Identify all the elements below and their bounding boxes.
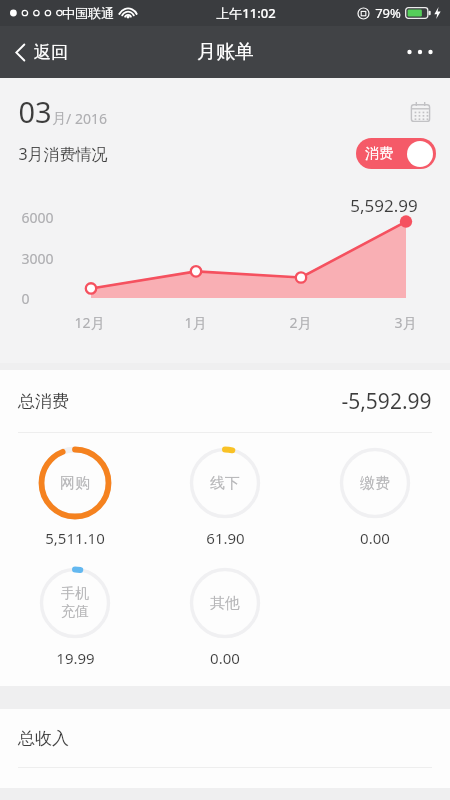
staticText: 月	[52, 110, 66, 128]
button[interactable]: More options	[391, 26, 450, 78]
staticText: 3月	[394, 313, 417, 332]
staticText: 3000	[21, 249, 54, 268]
button[interactable]: 返回	[0, 26, 84, 78]
button[interactable]: 网购	[0, 446, 150, 548]
staticText: 其他	[210, 594, 240, 613]
staticText: 5,592.99	[350, 194, 418, 217]
staticText: 充值	[61, 603, 89, 621]
staticText: 61.90	[206, 528, 245, 548]
staticText: 6000	[21, 208, 54, 227]
staticText: 0.00	[360, 528, 390, 548]
button[interactable]: 线下	[150, 446, 300, 548]
staticText: 03	[18, 92, 52, 131]
staticText: -5,592.99	[341, 387, 432, 416]
staticText: / 2016	[66, 109, 107, 128]
button[interactable]: 缴费	[300, 446, 450, 548]
staticText: 79%	[375, 4, 401, 22]
button[interactable]: 其他	[150, 566, 300, 668]
staticText: 0	[21, 289, 30, 308]
staticText: 12月	[74, 313, 105, 332]
staticText: 19.99	[56, 648, 95, 668]
button[interactable]: 手机	[0, 566, 150, 668]
staticText: 中国联通	[62, 5, 114, 21]
staticText: 月账单	[197, 40, 254, 64]
staticText: 线下	[210, 474, 240, 493]
staticText: 1月	[184, 313, 207, 332]
staticText: 5,511.10	[45, 528, 105, 548]
staticText: 手机	[61, 585, 89, 603]
staticText: 网购	[60, 474, 90, 493]
staticText: 总收入	[18, 728, 69, 749]
staticText: 缴费	[360, 474, 390, 493]
staticText: 总消费	[18, 391, 69, 412]
button[interactable]: Pick month	[405, 97, 436, 127]
button[interactable]: 消费	[356, 138, 436, 169]
staticText: 0.00	[210, 648, 240, 668]
staticText: 上午11:02	[216, 4, 276, 22]
staticText: 返回	[34, 42, 68, 63]
staticText: 3月消费情况	[18, 143, 108, 165]
staticText: 2月	[289, 313, 312, 332]
staticText: 消费	[365, 145, 393, 163]
